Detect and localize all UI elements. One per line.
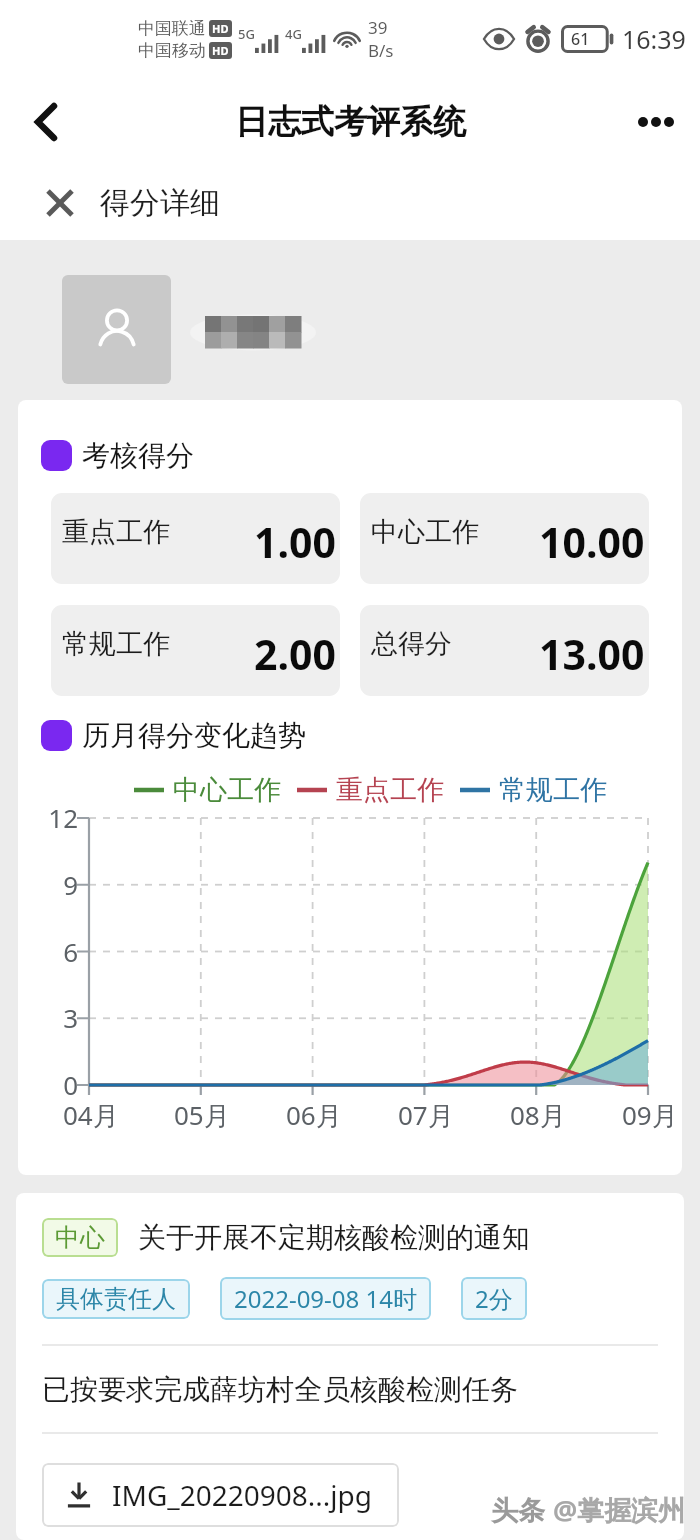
button[interactable]: IMG_20220908...jpg [42,1463,399,1527]
staticText: HD [212,43,229,58]
staticText: 16:39 [622,22,686,56]
staticText: 07月 [398,1097,454,1133]
staticText: 08月 [510,1097,566,1133]
button[interactable]: 总得分 [360,605,649,696]
staticText: 39 [368,16,388,39]
staticText: 日志式考评系统 [235,101,466,143]
button[interactable]: 具体责任人 [42,1279,190,1319]
staticText: 重点工作 [62,515,170,549]
button[interactable]: More options [626,92,686,152]
button[interactable]: 2分 [461,1277,527,1320]
staticText: 重点工作 [336,773,444,807]
staticText: 历月得分变化趋势 [82,718,306,753]
staticText: 常规工作 [62,627,170,661]
staticText: 得分详细 [100,184,220,222]
staticText: 06月 [286,1097,342,1133]
button[interactable]: 常规工作 [51,605,340,696]
staticText: 9 [21,867,78,902]
staticText: 2分 [475,1282,513,1315]
staticText: B/s [368,39,394,62]
staticText: 61 [571,28,590,50]
staticText: 2022-09-08 14时 [234,1282,417,1315]
staticText: 已按要求完成薛坊村全员核酸检测任务 [42,1372,518,1407]
button[interactable]: 重点工作 [51,493,340,584]
staticText: 4G [285,25,302,43]
staticText: @掌握滨州 [553,1491,686,1528]
staticText: 考核得分 [82,438,194,473]
staticText: 10.00 [539,514,645,570]
button[interactable]: Close [38,181,82,225]
staticText: HD [212,21,229,36]
staticText: 常规工作 [499,773,607,807]
staticText: 05月 [174,1097,230,1133]
staticText: 09月 [622,1097,678,1133]
staticText: 中心工作 [173,773,281,807]
staticText: 13.00 [539,626,645,682]
staticText: 1.00 [254,514,336,570]
staticText: 04月 [63,1097,119,1133]
button[interactable]: Back [18,94,74,150]
staticText: 6 [21,934,78,969]
staticText: 0 [21,1067,78,1102]
staticText: 总得分 [371,627,452,661]
staticText: 5G [238,25,255,43]
staticText: 3 [21,1000,78,1035]
staticText: 关于开展不定期核酸检测的通知 [138,1220,530,1255]
staticText: 2.00 [254,626,336,682]
staticText: 中心 [55,1222,105,1253]
staticText: 具体责任人 [56,1284,176,1314]
staticText: 12 [21,800,78,835]
staticText: 中国移动 [138,40,206,61]
button[interactable]: 2022-09-08 14时 [220,1277,431,1320]
staticText: 中国联通 [138,18,206,39]
staticText: IMG_20220908...jpg [112,1476,373,1514]
staticText: 中心工作 [371,515,479,549]
staticText: 头条 [491,1491,553,1528]
button[interactable]: 中心工作 [360,493,649,584]
